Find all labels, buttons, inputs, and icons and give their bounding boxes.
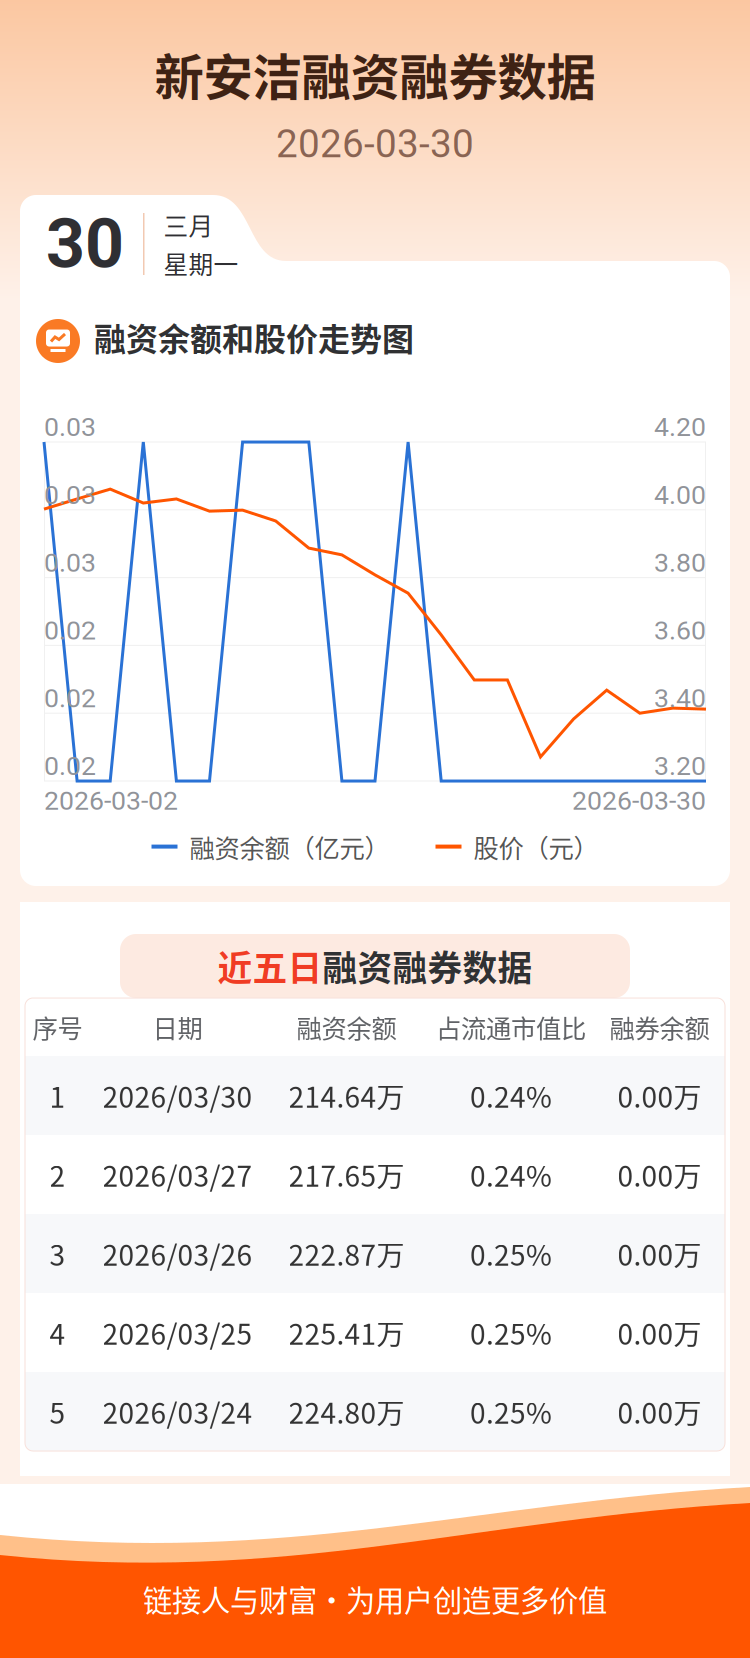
staticText: 2026-03-30	[572, 785, 706, 816]
staticText: 0.24%	[470, 1154, 552, 1195]
staticText: 4.00	[654, 479, 706, 510]
staticText: 0.00万	[617, 1154, 701, 1195]
staticText: 0.00万	[617, 1075, 701, 1116]
staticText: 0.02	[44, 615, 96, 646]
staticText: 0.00万	[617, 1391, 701, 1432]
staticText: 225.41万	[288, 1312, 404, 1353]
staticText: 序号	[32, 1009, 82, 1045]
staticText: 日期	[152, 1009, 202, 1045]
staticText: 星期一	[163, 245, 238, 281]
staticText: 0.03	[44, 479, 96, 510]
staticText: 近五日	[217, 941, 322, 991]
staticText: 2026/03/25	[102, 1312, 252, 1353]
staticText: 3.60	[654, 615, 706, 646]
staticText: 3.80	[654, 547, 706, 578]
staticText: 0.25%	[470, 1391, 552, 1432]
staticText: 4	[49, 1312, 65, 1353]
staticText: 三月	[163, 207, 213, 242]
staticText: 融资余额	[296, 1009, 396, 1045]
staticText: 0.25%	[470, 1233, 552, 1274]
staticText: 0.03	[44, 411, 96, 443]
staticText: 2026/03/30	[102, 1075, 252, 1116]
staticText: 2026/03/27	[102, 1154, 252, 1195]
staticText: 0.03	[44, 547, 96, 578]
staticText: 0.02	[44, 750, 96, 782]
staticText: 融资余额（亿元）	[189, 828, 389, 865]
staticText: 30	[46, 204, 124, 284]
staticText: 0.02	[44, 683, 96, 714]
staticText: 融券余额	[609, 1009, 709, 1045]
staticText: 3.20	[654, 750, 706, 782]
staticText: 4.20	[654, 411, 706, 443]
staticText: 0.25%	[470, 1312, 552, 1353]
staticText: 2026-03-02	[44, 785, 178, 816]
staticText: 0.24%	[470, 1075, 552, 1116]
staticText: 融资余额和股价走势图	[94, 314, 414, 360]
staticText: 222.87万	[288, 1233, 404, 1274]
staticText: 股价（元）	[473, 828, 598, 865]
staticText: 5	[49, 1391, 65, 1432]
staticText: 2026/03/24	[102, 1391, 252, 1432]
staticText: 新安洁融资融券数据	[154, 38, 595, 109]
staticText: 224.80万	[288, 1391, 404, 1432]
staticText: 214.64万	[288, 1075, 404, 1116]
staticText: 3.40	[654, 683, 706, 714]
staticText: 2	[49, 1154, 65, 1195]
staticText: 占流通市值比	[436, 1009, 586, 1045]
staticText: 链接人与财富·为用户创造更多价值	[143, 1577, 607, 1620]
staticText: 2026/03/26	[102, 1233, 252, 1274]
staticText: 2026-03-30	[276, 121, 474, 167]
staticText: 3	[49, 1233, 65, 1274]
staticText: 1	[49, 1075, 65, 1116]
staticText: 0.00万	[617, 1312, 701, 1353]
staticText: 融资融券数据	[322, 941, 532, 991]
staticText: 0.00万	[617, 1233, 701, 1274]
staticText: 217.65万	[288, 1154, 404, 1195]
